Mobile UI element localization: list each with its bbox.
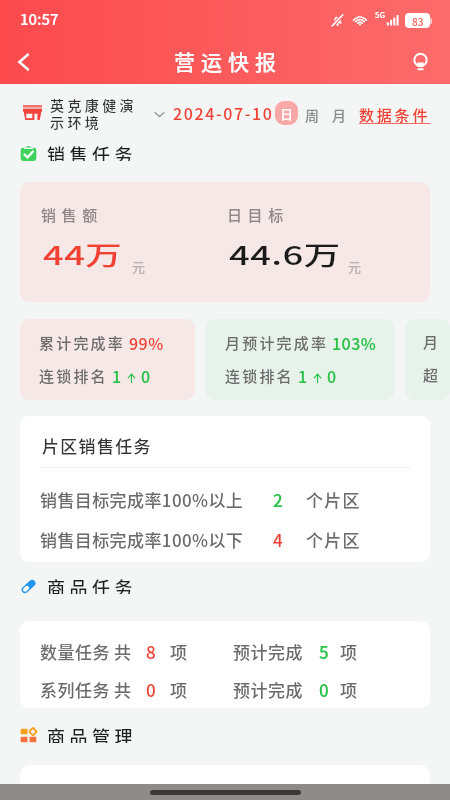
button[interactable]: 数据条件 [359,104,431,126]
staticText: 月预计完成率 [225,332,329,354]
button[interactable]: 片区销售任务 [20,416,430,562]
button[interactable] [20,765,430,789]
staticText: 1 [298,364,308,387]
staticText: 日目标 [227,204,289,226]
staticText: 项 [170,639,187,664]
staticText: 超 [423,364,439,386]
staticText: 8 [146,639,156,664]
button[interactable]: Back [4,42,44,82]
staticText: 10:57 [20,8,59,30]
staticText: 4 [273,527,283,552]
staticText: 1 [112,364,122,387]
staticText: 商品管理 [47,723,137,743]
staticText: 共 [114,639,131,664]
staticText: 销售目标完成率100%以上 [40,487,244,512]
staticText: 2 [273,487,283,512]
staticText: 0 [146,677,156,702]
staticText: 累计完成率 [39,332,126,354]
staticText: 销售目标完成率100%以下 [40,527,244,552]
button[interactable]: 月 [405,319,450,400]
button[interactable]: Tips [400,42,440,82]
button[interactable]: 周 [305,105,319,125]
staticText: 月 [423,331,439,353]
staticText: 103% [332,331,377,354]
button[interactable]: 数量任务 [20,621,430,708]
staticText: 系列任务 [40,677,110,702]
staticText: 5 [319,639,329,664]
staticText: 元 [348,257,362,276]
staticText: 元 [132,257,146,276]
staticText: 日 [280,104,294,123]
staticText: 销售额 [41,204,103,226]
button[interactable]: 销售额 [20,182,430,302]
staticText: 项 [170,677,187,702]
staticText: 44.6万 [229,235,341,273]
staticText: 英克康健演 [50,95,137,115]
staticText: 个片区 [306,527,361,552]
staticText: 个片区 [306,487,361,512]
button[interactable]: 日 [275,101,298,125]
staticText: 2024-07-10 [173,101,274,124]
button[interactable]: 月预计完成率 [206,319,394,400]
staticText: 项 [340,677,357,702]
staticText: 99% [129,331,164,354]
staticText: 数量任务 [40,639,110,664]
staticText: 0 [319,677,329,702]
staticText: 5G [375,9,386,21]
staticText: 示环境 [50,112,103,132]
staticText: 商品任务 [47,574,137,594]
staticText: 销售任务 [47,141,137,161]
staticText: 营运快报 [174,46,282,76]
staticText: 83 [412,14,424,28]
staticText: 连锁排名 [39,365,108,387]
staticText: 预计完成 [233,639,303,664]
staticText: 44万 [43,235,123,273]
staticText: 项 [340,639,357,664]
staticText: 共 [114,677,131,702]
staticText: 片区销售任务 [42,433,152,458]
staticText: 0 [327,364,337,387]
staticText: 连锁排名 [225,365,294,387]
button[interactable]: 累计完成率 [20,319,195,400]
staticText: 0 [141,364,151,387]
staticText: 预计完成 [233,677,303,702]
button[interactable]: 月 [332,105,346,125]
